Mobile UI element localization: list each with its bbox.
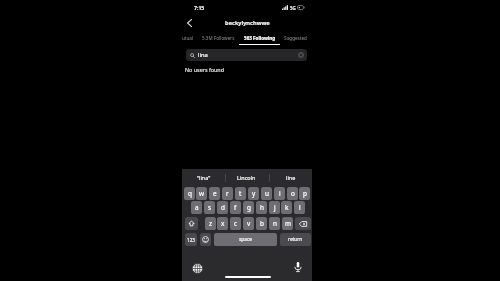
button[interactable]: d	[217, 201, 228, 214]
button[interactable]: n	[269, 217, 280, 230]
staticText: l	[299, 203, 301, 212]
staticText: x	[221, 219, 225, 228]
staticText: z	[209, 219, 213, 228]
button[interactable]: z	[205, 217, 216, 230]
staticText: 5G	[290, 5, 296, 11]
staticText: beckylynchwwe	[225, 19, 270, 27]
staticText: j	[274, 203, 276, 212]
button[interactable]: s	[204, 201, 215, 214]
button[interactable]: k	[281, 201, 292, 214]
button[interactable]: 563 Following	[244, 32, 276, 43]
button[interactable]: e	[209, 187, 220, 200]
staticText: o	[291, 189, 295, 198]
staticText: d	[221, 203, 225, 212]
staticText: p	[303, 189, 307, 198]
button[interactable]: a	[191, 201, 202, 214]
staticText: 5.3M Followers	[202, 35, 235, 41]
button[interactable]: 5.3M Followers	[202, 32, 235, 43]
button[interactable]: t	[235, 187, 246, 200]
staticText: u	[265, 189, 269, 198]
button[interactable]: f	[230, 201, 241, 214]
button[interactable]: x	[217, 217, 228, 230]
button[interactable]: Dictation	[292, 261, 304, 273]
staticText: i	[279, 189, 281, 198]
button[interactable]: g	[243, 201, 254, 214]
button[interactable]: q	[184, 187, 195, 200]
button[interactable]: o	[287, 187, 298, 200]
staticText: b	[260, 219, 264, 228]
button[interactable]: Delete	[295, 217, 311, 230]
staticText: f	[234, 203, 237, 212]
button[interactable]: w	[196, 187, 207, 200]
button[interactable]: i	[274, 187, 285, 200]
button[interactable]: lina	[186, 49, 307, 61]
staticText: n	[273, 219, 277, 228]
button[interactable]: h	[256, 201, 267, 214]
staticText: 7:15	[194, 4, 205, 11]
staticText: 123	[187, 237, 195, 243]
staticText: return	[288, 236, 303, 243]
staticText: No users found	[185, 66, 225, 73]
button[interactable]: Back	[183, 17, 195, 29]
button[interactable]: utual	[182, 32, 194, 43]
button[interactable]: u	[261, 187, 272, 200]
staticText: s	[208, 203, 212, 212]
staticText: k	[285, 203, 289, 212]
button[interactable]: v	[243, 217, 254, 230]
staticText: Suggested	[284, 35, 307, 41]
staticText: c	[234, 219, 238, 228]
button[interactable]: space	[214, 233, 277, 246]
staticText: q	[188, 189, 192, 198]
staticText: 563 Following	[244, 35, 276, 41]
button[interactable]: 123	[185, 233, 197, 246]
button[interactable]: Clear	[298, 52, 304, 58]
staticText: space	[239, 236, 252, 243]
button[interactable]: b	[256, 217, 267, 230]
button[interactable]: Shift	[185, 217, 198, 230]
button[interactable]: y	[248, 187, 259, 200]
staticText: w	[199, 189, 205, 198]
staticText: h	[260, 203, 264, 212]
staticText: m	[285, 219, 291, 228]
staticText: t	[239, 189, 242, 198]
staticText: lina	[198, 51, 208, 59]
staticText: y	[252, 189, 256, 198]
staticText: “lina”	[197, 174, 211, 181]
staticText: a	[195, 203, 199, 212]
button[interactable]: Suggested	[284, 32, 307, 43]
staticText: v	[247, 219, 251, 228]
staticText: r	[226, 189, 229, 198]
button[interactable]: Lincoln	[225, 169, 268, 186]
button[interactable]: j	[269, 201, 280, 214]
staticText: g	[247, 203, 251, 212]
button[interactable]: “lina”	[182, 169, 225, 186]
button[interactable]: return	[280, 233, 311, 246]
button[interactable]: Change keyboard	[191, 262, 203, 274]
staticText: e	[213, 189, 217, 198]
button[interactable]: m	[282, 217, 293, 230]
button[interactable]: line	[269, 169, 312, 186]
staticText: utual	[182, 35, 194, 41]
staticText: line	[286, 174, 296, 181]
button[interactable]: Emoji	[200, 233, 211, 246]
button[interactable]: p	[299, 187, 310, 200]
staticText: Lincoln	[237, 174, 256, 181]
button[interactable]: r	[222, 187, 233, 200]
button[interactable]: c	[230, 217, 241, 230]
button[interactable]: beckylynchwwe	[210, 17, 285, 29]
button[interactable]: l	[294, 201, 305, 214]
